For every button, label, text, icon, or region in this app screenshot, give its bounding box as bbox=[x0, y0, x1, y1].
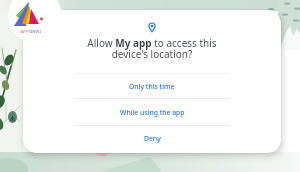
button[interactable]: While using the app bbox=[23, 99, 281, 125]
staticText: Only this time bbox=[129, 82, 175, 91]
button[interactable]: Deny bbox=[23, 126, 281, 150]
button[interactable]: Only this time bbox=[23, 74, 281, 98]
staticText: Allow My app to access this device's loc… bbox=[23, 36, 281, 61]
staticText: APPSINVO bbox=[11, 28, 51, 34]
staticText: While using the app bbox=[120, 108, 185, 117]
staticText: Deny bbox=[144, 134, 161, 143]
